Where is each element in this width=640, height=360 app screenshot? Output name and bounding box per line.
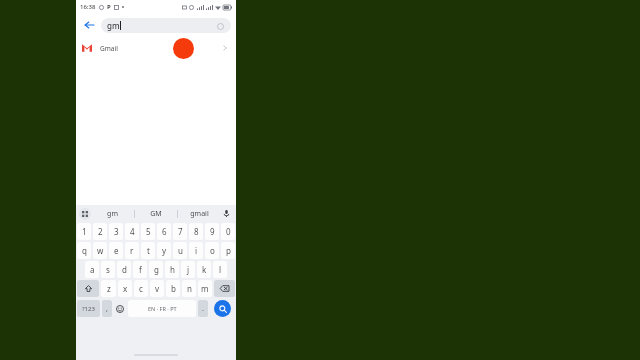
staticText: o	[210, 245, 215, 256]
staticText: j	[187, 264, 190, 275]
button[interactable]: x	[118, 280, 132, 297]
button[interactable]: r	[125, 242, 139, 259]
other: Open Gmail	[220, 43, 230, 53]
button[interactable]: 8	[189, 223, 203, 240]
button[interactable]: k	[197, 261, 211, 278]
button[interactable]: q	[77, 242, 91, 259]
staticText: 5	[146, 226, 151, 237]
button[interactable]: j	[181, 261, 195, 278]
button[interactable]: GM	[135, 205, 177, 222]
button[interactable]: Shift	[77, 280, 99, 297]
staticText: d	[122, 264, 127, 275]
button[interactable]: 1	[77, 223, 91, 240]
staticText: z	[107, 283, 111, 294]
button[interactable]: Keyboard options	[79, 208, 91, 220]
button[interactable]: w	[93, 242, 107, 259]
button[interactable]: Clear search	[215, 21, 225, 31]
staticText: 9	[210, 226, 215, 237]
staticText: 2	[98, 226, 103, 237]
button[interactable]: Voice input	[220, 207, 233, 220]
button[interactable]: Back	[81, 17, 97, 33]
button[interactable]: t	[141, 242, 155, 259]
staticText: gmail	[190, 209, 209, 219]
staticText: y	[162, 245, 167, 256]
staticText: 4	[130, 226, 135, 237]
staticText: u	[178, 245, 183, 256]
button[interactable]: Emoji	[113, 298, 127, 319]
staticText: x	[123, 283, 128, 294]
staticText: 1	[82, 226, 87, 237]
staticText: ,	[106, 304, 108, 314]
staticText: ?123	[82, 305, 95, 313]
button[interactable]: o	[205, 242, 219, 259]
button[interactable]: u	[173, 242, 187, 259]
button[interactable]: i	[189, 242, 203, 259]
staticText: s	[106, 264, 110, 275]
button[interactable]: f	[133, 261, 147, 278]
button[interactable]: gm	[101, 18, 231, 33]
button[interactable]: h	[165, 261, 179, 278]
staticText: EN · FR · PT	[148, 305, 177, 312]
staticText: 7	[178, 226, 183, 237]
button[interactable]: 4	[125, 223, 139, 240]
button[interactable]: e	[109, 242, 123, 259]
staticText: v	[155, 283, 160, 294]
button[interactable]: ,	[102, 300, 112, 317]
button[interactable]: 9	[205, 223, 219, 240]
staticText: P	[107, 3, 111, 11]
staticText: Gmail	[100, 44, 118, 53]
button[interactable]: y	[157, 242, 171, 259]
button[interactable]: .	[198, 300, 208, 317]
button[interactable]: a	[85, 261, 99, 278]
button[interactable]: 2	[93, 223, 107, 240]
staticText: w	[97, 245, 104, 256]
staticText: n	[187, 283, 192, 294]
button[interactable]: g	[149, 261, 163, 278]
button[interactable]: 6	[157, 223, 171, 240]
button[interactable]: ?123	[77, 300, 100, 317]
button[interactable]: v	[150, 280, 164, 297]
staticText: r	[130, 245, 134, 256]
button[interactable]: Search	[214, 300, 231, 317]
staticText: m	[201, 283, 209, 294]
staticText: GM	[150, 209, 162, 219]
button[interactable]: n	[182, 280, 196, 297]
staticText: 3	[114, 226, 119, 237]
staticText: l	[219, 264, 222, 275]
button[interactable]: m	[198, 280, 212, 297]
button[interactable]: d	[117, 261, 131, 278]
button[interactable]: p	[221, 242, 235, 259]
staticText: p	[226, 245, 231, 256]
staticText: 0	[226, 226, 231, 237]
staticText: h	[170, 264, 175, 275]
staticText: f	[139, 264, 142, 275]
button[interactable]: Gmail	[76, 36, 236, 60]
staticText: 6	[162, 226, 167, 237]
staticText: k	[202, 264, 207, 275]
button[interactable]: l	[213, 261, 227, 278]
button[interactable]: z	[101, 280, 116, 297]
staticText: b	[171, 283, 176, 294]
staticText: a	[90, 264, 95, 275]
staticText: 16:38	[80, 3, 96, 11]
button[interactable]: 7	[173, 223, 187, 240]
staticText: t	[147, 245, 150, 256]
button[interactable]: 3	[109, 223, 123, 240]
button[interactable]: Backspace	[214, 280, 235, 297]
staticText: gm	[107, 209, 118, 219]
button[interactable]: gm	[91, 205, 134, 222]
staticText: i	[195, 245, 198, 256]
button[interactable]: 5	[141, 223, 155, 240]
staticText: 8	[194, 226, 199, 237]
button[interactable]: gmail	[178, 205, 220, 222]
button[interactable]: b	[166, 280, 180, 297]
button[interactable]: s	[101, 261, 115, 278]
button[interactable]: c	[134, 280, 148, 297]
button[interactable]: EN · FR · PT	[128, 300, 196, 317]
staticText: gm	[107, 20, 120, 31]
staticText: e	[114, 245, 119, 256]
button[interactable]: 0	[221, 223, 235, 240]
staticText: q	[82, 245, 87, 256]
staticText: .	[202, 304, 204, 314]
staticText: c	[139, 283, 143, 294]
